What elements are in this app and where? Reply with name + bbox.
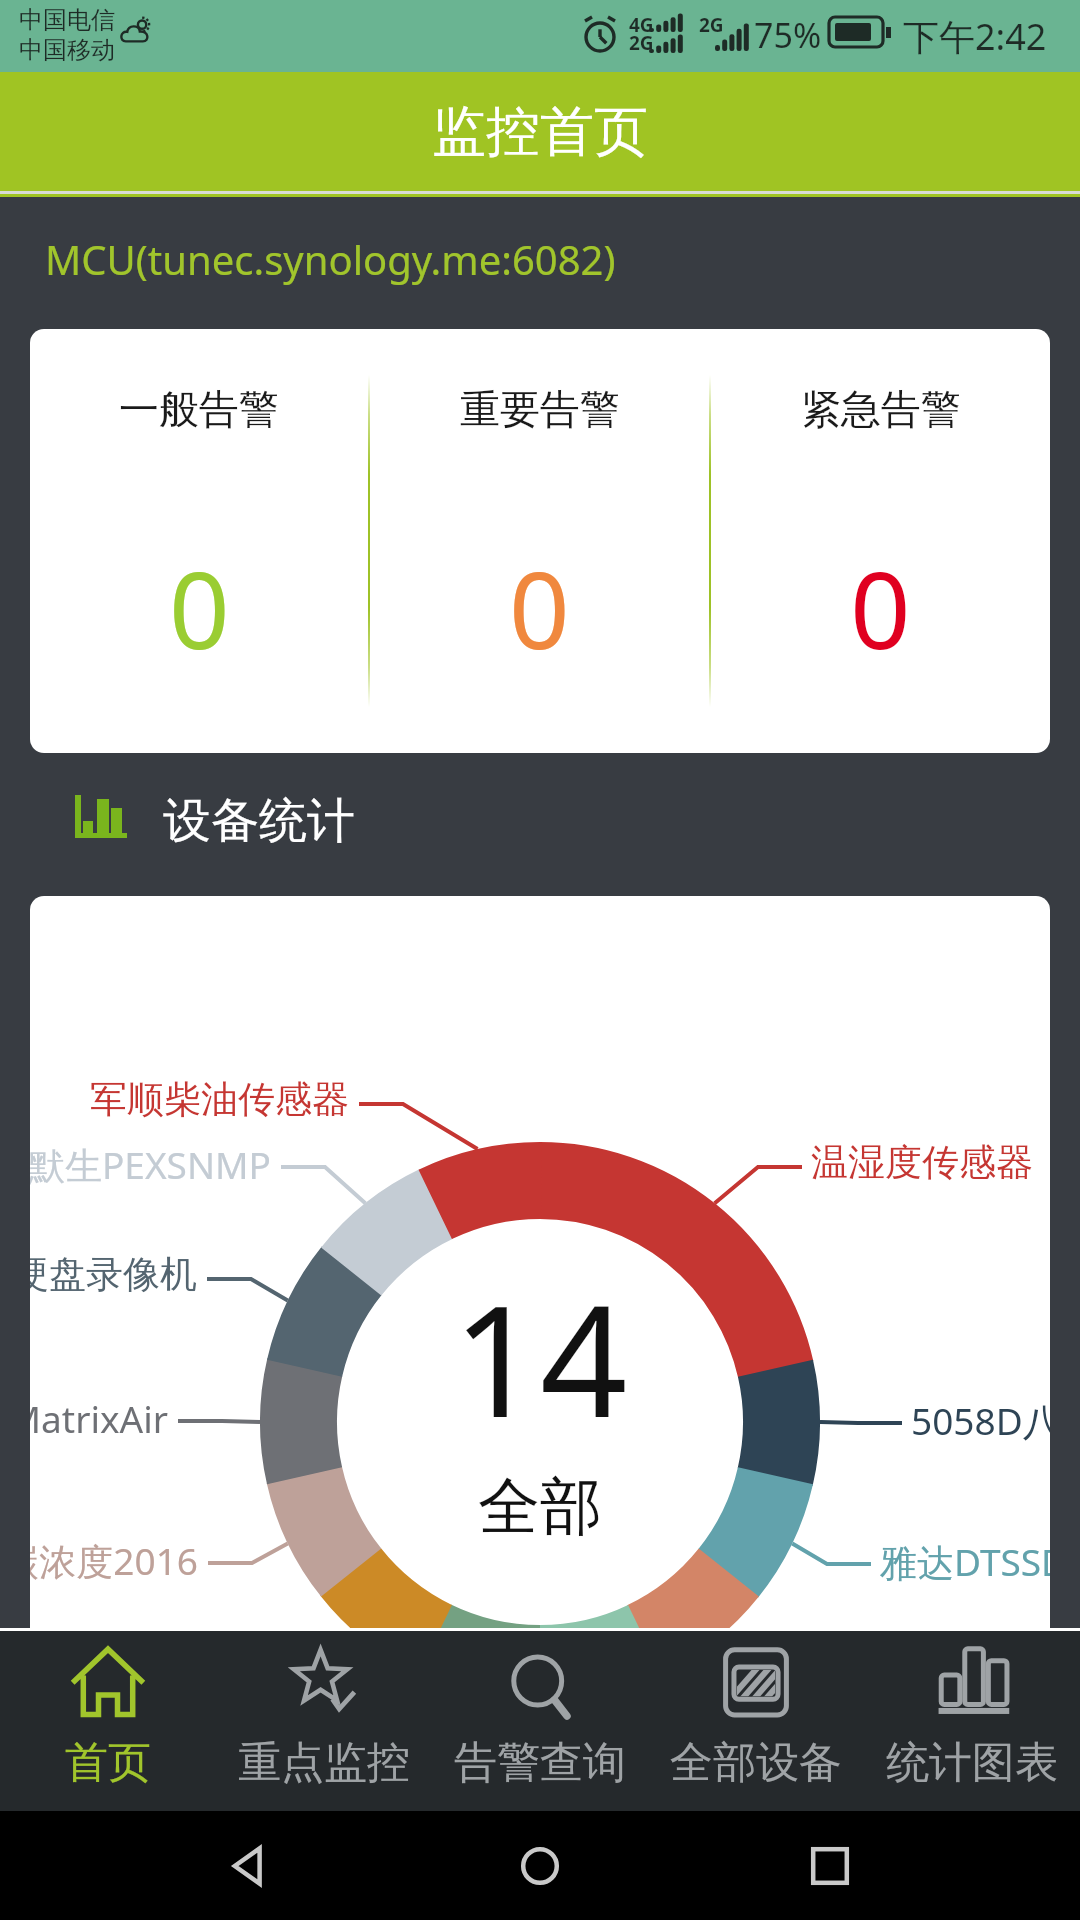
- staticText: 重点监控: [238, 1736, 410, 1790]
- staticText: MatrixAir: [30, 1393, 168, 1443]
- staticText: 设备统计: [163, 791, 355, 851]
- button[interactable]: 全部设备: [648, 1631, 864, 1811]
- staticText: 统计图表: [886, 1736, 1058, 1790]
- button[interactable]: 紧急告警: [711, 329, 1050, 753]
- button[interactable]: 告警查询: [432, 1631, 648, 1811]
- staticText: 4G: [629, 12, 654, 38]
- staticText: 碳浓度2016: [30, 1535, 198, 1586]
- staticText: 2G: [629, 30, 654, 56]
- button[interactable]: Recents: [790, 1826, 870, 1906]
- staticText: 紧急告警: [801, 384, 961, 434]
- staticText: 默生PEXSNMP: [30, 1139, 271, 1190]
- button[interactable]: Home: [500, 1826, 580, 1906]
- staticText: 0: [509, 536, 570, 680]
- staticText: MCU(tunec.synology.me:6082): [45, 232, 616, 286]
- button[interactable]: 一般告警: [30, 329, 368, 753]
- staticText: 2G: [699, 12, 724, 38]
- staticText: 首页: [65, 1736, 151, 1790]
- staticText: 中国移动: [19, 35, 115, 65]
- button[interactable]: 重要告警: [370, 329, 709, 753]
- staticText: 75%: [754, 12, 822, 58]
- staticText: 硬盘录像机: [30, 1251, 197, 1298]
- staticText: 军顺柴油传感器: [90, 1076, 349, 1123]
- staticText: 14: [452, 1253, 628, 1461]
- staticText: 雅达DTSSD1352: [880, 1536, 1050, 1587]
- staticText: 告警查询: [454, 1736, 626, 1790]
- staticText: 0: [169, 536, 230, 680]
- button[interactable]: 重点监控: [216, 1631, 432, 1811]
- staticText: 下午2:42: [903, 12, 1047, 61]
- staticText: 5058D八进制数字量输: [911, 1395, 1050, 1446]
- button[interactable]: 统计图表: [864, 1631, 1080, 1811]
- button[interactable]: 首页: [0, 1631, 216, 1811]
- staticText: 重要告警: [460, 384, 620, 434]
- staticText: 0: [850, 536, 911, 680]
- staticText: 全部设备: [670, 1736, 842, 1790]
- staticText: 全部: [478, 1468, 602, 1546]
- button[interactable]: 一般告警: [30, 329, 1050, 753]
- staticText: 温湿度传感器: [811, 1139, 1033, 1186]
- staticText: 中国电信: [19, 5, 115, 35]
- staticText: 一般告警: [119, 384, 279, 434]
- button[interactable]: Back: [210, 1826, 290, 1906]
- staticText: 监控首页: [432, 98, 648, 166]
